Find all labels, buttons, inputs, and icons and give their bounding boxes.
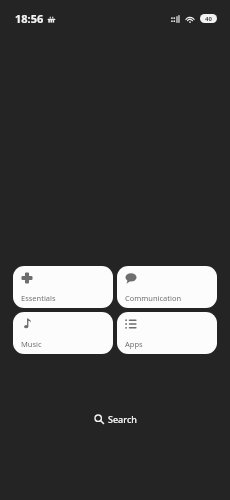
staticText: 40	[205, 15, 212, 23]
button[interactable]: Search	[84, 409, 147, 429]
button[interactable]: Communication	[117, 266, 217, 308]
staticText: Music	[21, 339, 42, 349]
button[interactable]: Apps	[117, 312, 217, 354]
staticText: Essentials	[21, 293, 56, 303]
staticText: Search	[108, 413, 137, 425]
button[interactable]: Music	[13, 312, 113, 354]
button[interactable]: Essentials	[13, 266, 113, 308]
staticText: Communication	[125, 293, 182, 303]
staticText: 18:56	[15, 11, 44, 26]
staticText: Apps	[125, 339, 143, 349]
